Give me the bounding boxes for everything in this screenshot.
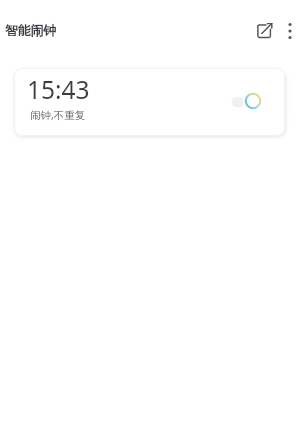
button[interactable]: 15:43 [14, 68, 285, 136]
button[interactable]: 智能闹钟 [5, 23, 57, 39]
button[interactable]: More options [276, 17, 296, 45]
staticText: 闹钟,不重复 [30, 108, 86, 122]
staticText: 智能闹钟 [5, 23, 57, 39]
button[interactable]: Open in new window [252, 16, 280, 44]
staticText: 15:43 [27, 73, 90, 106]
button[interactable]: Alarm enabled, toggle off [234, 91, 282, 111]
